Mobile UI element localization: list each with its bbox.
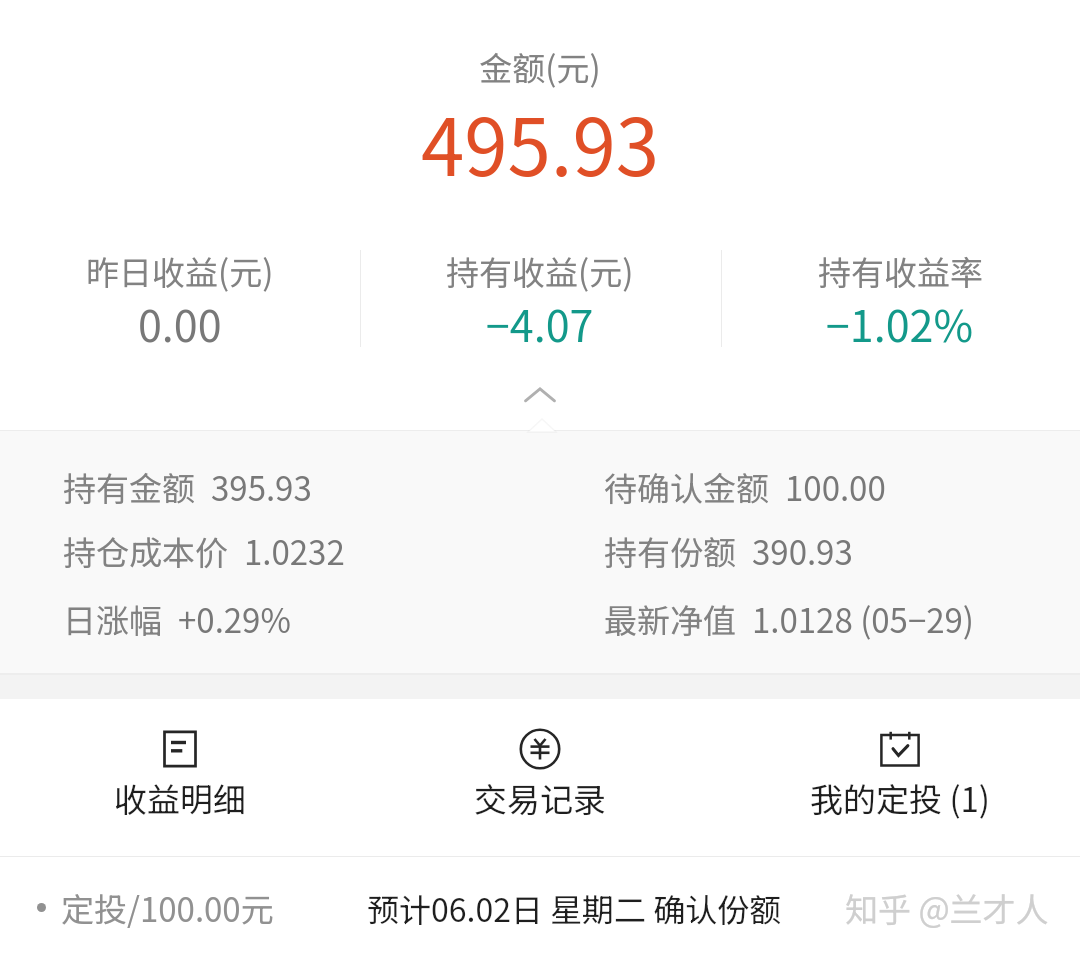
staticText: 1.0232 bbox=[244, 527, 345, 575]
staticText: 1.0128 (05−29) bbox=[752, 595, 975, 643]
staticText: 持仓成本价 bbox=[63, 527, 228, 575]
button[interactable]: 昨日收益(元) bbox=[0, 247, 360, 357]
button[interactable]: 收益明细 bbox=[0, 699, 360, 856]
staticText: 昨日收益(元) bbox=[86, 247, 274, 295]
button[interactable]: 持有收益(元) bbox=[360, 247, 720, 357]
staticText: 100.00 bbox=[785, 463, 886, 511]
staticText: 金额(元) bbox=[0, 43, 1080, 91]
staticText: 我的定投 (1) bbox=[810, 774, 991, 822]
staticText: 390.93 bbox=[752, 527, 853, 575]
staticText: 待确认金额 bbox=[604, 463, 769, 511]
button[interactable]: 定投/100.00元 bbox=[0, 857, 1080, 958]
staticText: 持有份额 bbox=[604, 527, 736, 575]
staticText: 0.00 bbox=[138, 292, 222, 354]
staticText: 知乎 @兰才人 bbox=[845, 884, 1049, 932]
staticText: 持有收益(元) bbox=[446, 247, 634, 295]
staticText: 最新净值 bbox=[604, 595, 736, 643]
staticText: 定投/100.00元 bbox=[61, 884, 274, 932]
staticText: 395.93 bbox=[211, 463, 312, 511]
staticText: 预计06.02日 星期二 确认份额 bbox=[367, 885, 782, 931]
staticText: 持有金额 bbox=[63, 463, 195, 511]
staticText: 收益明细 bbox=[114, 774, 246, 822]
staticText: +0.29% bbox=[178, 595, 291, 643]
button[interactable]: 交易记录 bbox=[360, 699, 720, 856]
staticText: 495.93 bbox=[0, 86, 1080, 199]
staticText: 持有收益率 bbox=[818, 247, 983, 295]
button[interactable]: 持有收益率 bbox=[720, 247, 1080, 357]
staticText: 日涨幅 bbox=[63, 595, 162, 643]
button[interactable]: 收起 bbox=[500, 372, 580, 416]
staticText: −4.07 bbox=[486, 292, 594, 354]
button[interactable]: 我的定投 (1) bbox=[720, 699, 1080, 856]
staticText: 交易记录 bbox=[474, 774, 606, 822]
staticText: −1.02% bbox=[826, 292, 974, 354]
